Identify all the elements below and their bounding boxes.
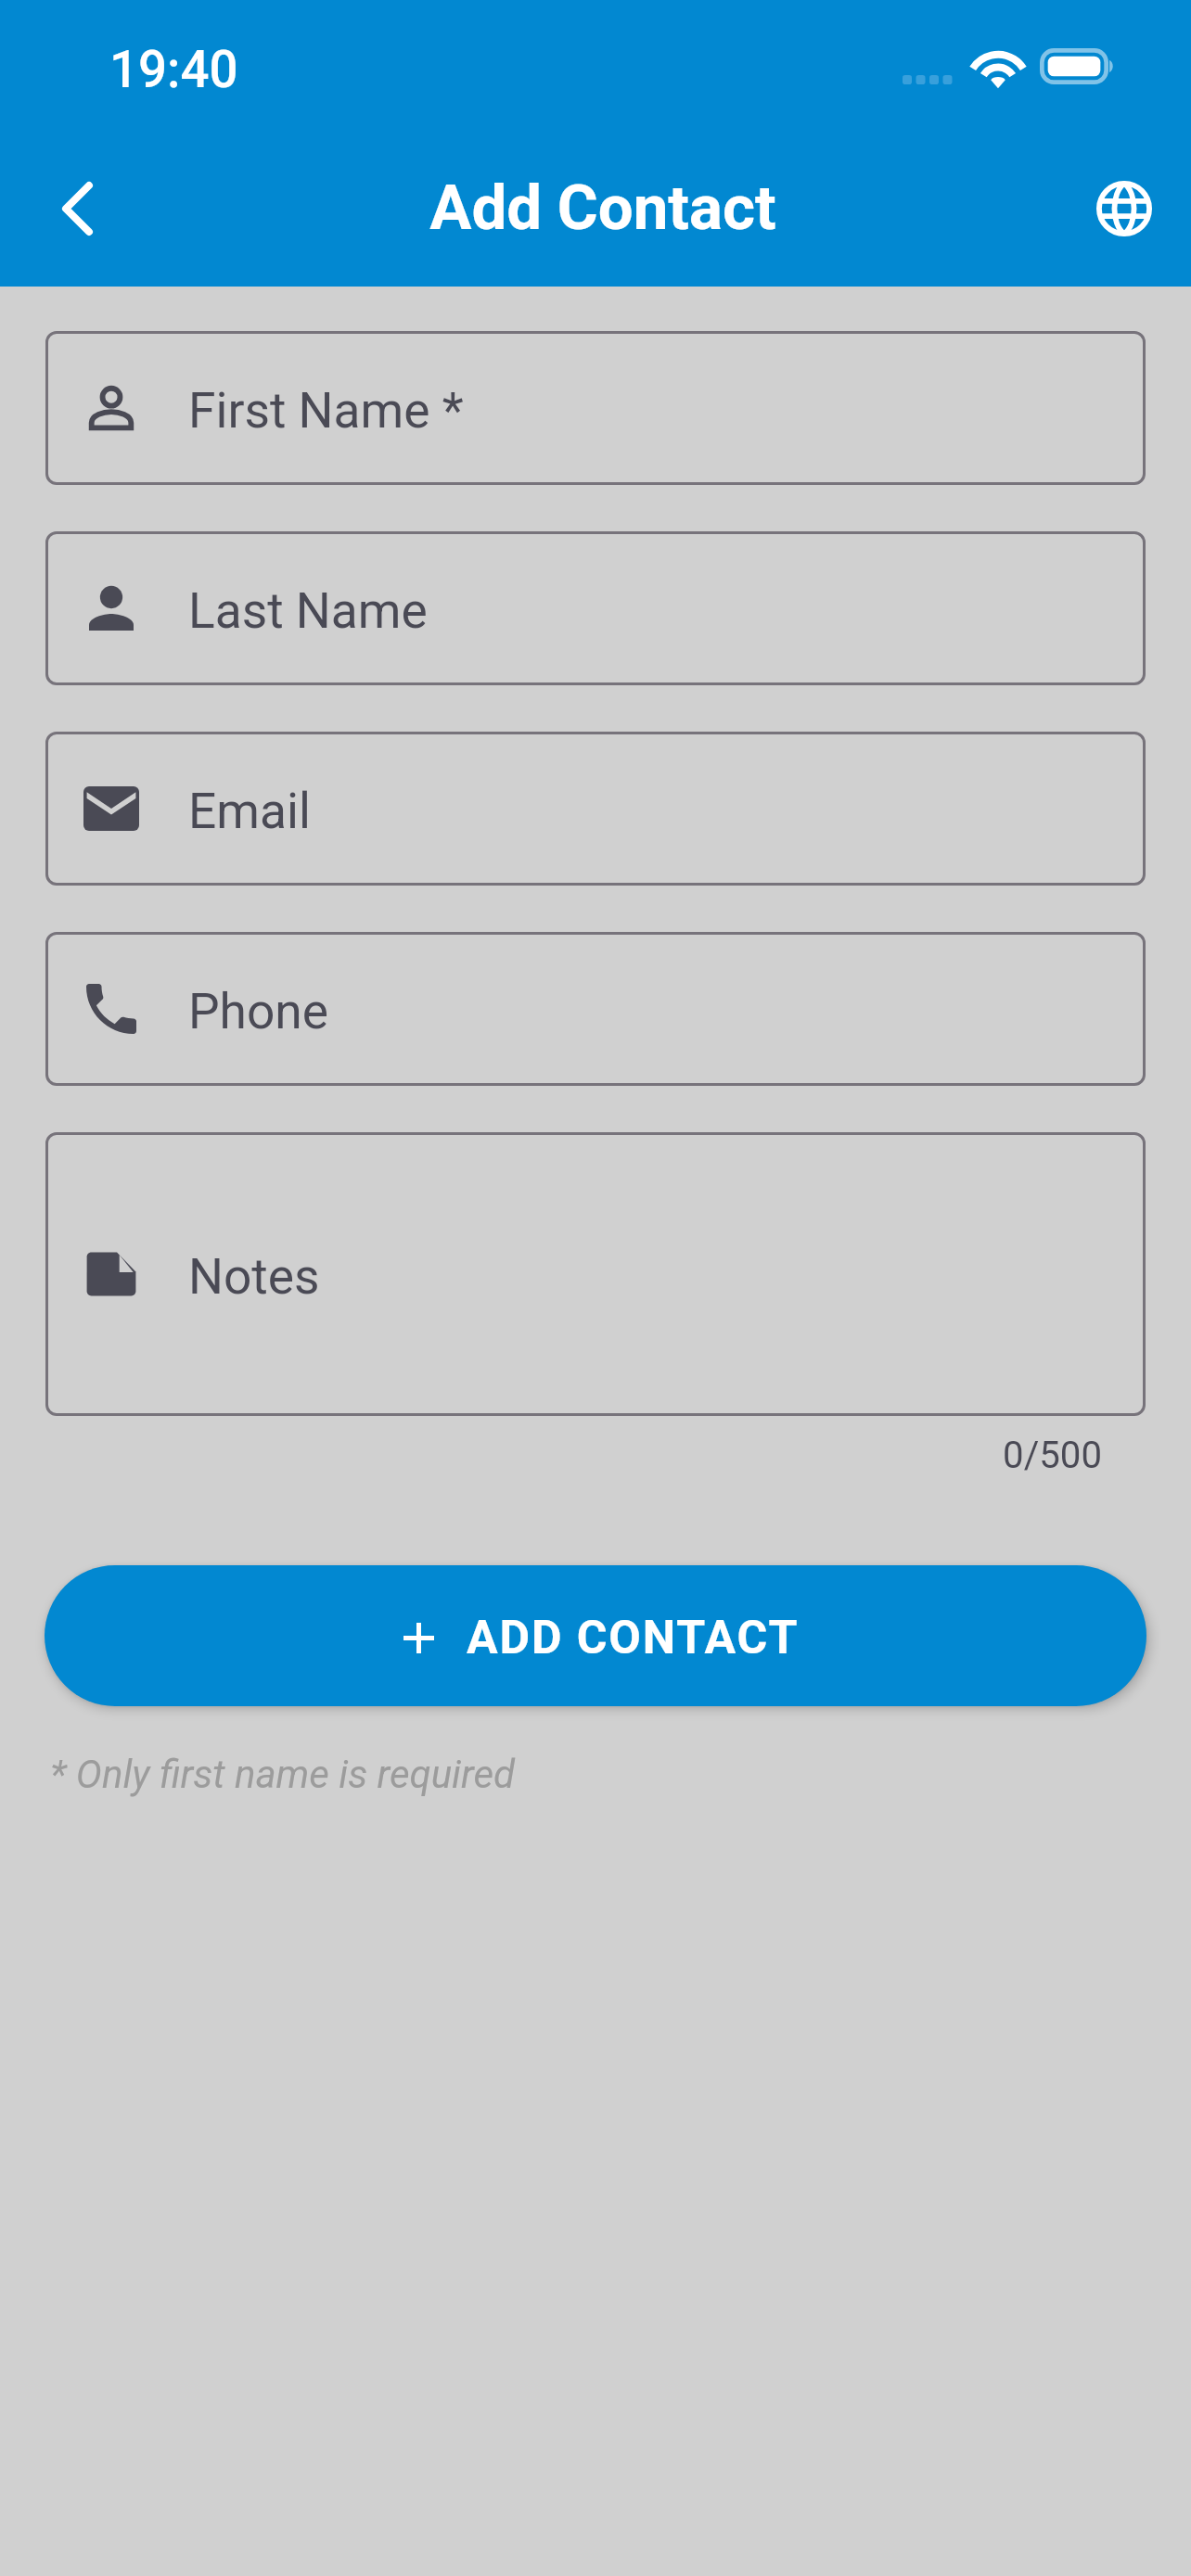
staticText: Email — [188, 783, 311, 840]
staticText: Notes — [188, 1248, 320, 1306]
staticText: Add Contact — [149, 172, 1057, 245]
staticText: 19:40 — [109, 40, 238, 99]
button[interactable]: Email — [45, 732, 1146, 886]
button[interactable]: Last Name — [45, 531, 1146, 685]
staticText: Phone — [188, 983, 328, 1040]
staticText: 0/500 — [0, 1434, 1102, 1477]
staticText: First Name * — [188, 382, 464, 440]
staticText: Last Name — [188, 582, 428, 640]
button[interactable]: Notes — [45, 1132, 1146, 1416]
staticText: ADD CONTACT — [467, 1611, 800, 1665]
button[interactable]: First Name * — [45, 331, 1146, 485]
button[interactable]: Phone — [45, 932, 1146, 1086]
button[interactable]: Language — [1057, 141, 1191, 275]
button[interactable]: Back — [5, 136, 149, 281]
button[interactable]: ADD CONTACT — [45, 1565, 1146, 1706]
staticText: * Only first name is required — [50, 1752, 515, 1797]
